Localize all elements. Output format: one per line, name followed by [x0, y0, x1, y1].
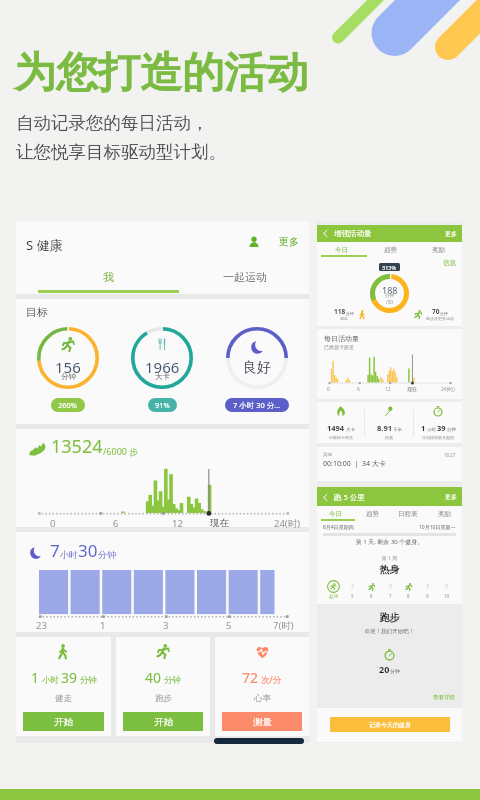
- staticText: 其他: [323, 452, 332, 458]
- staticText: /6000 步: [103, 445, 139, 457]
- staticText: 260%: [58, 400, 78, 410]
- button[interactable]: 趋势: [354, 506, 390, 521]
- button[interactable]: 奖励: [414, 242, 462, 257]
- staticText: 分钟: [346, 311, 354, 316]
- button[interactable]: 奖励: [426, 506, 462, 521]
- staticText: 20: [379, 663, 390, 675]
- staticText: 188: [382, 284, 398, 296]
- staticText: 30: [78, 539, 98, 562]
- staticText: 自动记录您的每日活动， 让您悦享目标驱动型计划。: [16, 112, 226, 163]
- staticText: 6: [370, 593, 373, 599]
- button[interactable]: 更多: [248, 235, 299, 248]
- staticText: 开始: [54, 716, 73, 728]
- button[interactable]: 一起运动: [179, 264, 310, 290]
- button[interactable]: 查看详情: [433, 694, 455, 701]
- staticText: 分钟: [447, 427, 456, 433]
- staticText: 记录今天的健身: [369, 721, 411, 729]
- button[interactable]: 6: [365, 580, 378, 599]
- staticText: 40: [145, 668, 162, 687]
- staticText: 70: [432, 307, 440, 316]
- staticText: 健走: [340, 316, 348, 321]
- staticText: 12: [172, 517, 183, 530]
- button[interactable]: 我: [38, 264, 179, 290]
- button[interactable]: 开始: [23, 712, 104, 731]
- staticText: 热身: [317, 563, 462, 576]
- staticText: 8月4日星期四: [323, 524, 354, 531]
- staticText: 7(时): [273, 619, 294, 632]
- button[interactable]: 日程表: [390, 506, 426, 521]
- button[interactable]: 测量: [222, 712, 302, 731]
- button[interactable]: 更多: [445, 493, 457, 501]
- staticText: 小时: [42, 675, 59, 686]
- staticText: 开始: [154, 716, 173, 728]
- button[interactable]: 今日: [317, 242, 366, 257]
- staticText: 已燃烧卡路里: [329, 435, 353, 440]
- button[interactable]: 开始: [123, 712, 203, 731]
- staticText: S 健康: [26, 236, 63, 254]
- button[interactable]: 记录今天的健身: [330, 717, 450, 732]
- button[interactable]: 1966: [131, 327, 193, 412]
- button[interactable]: ?: [421, 580, 434, 599]
- staticText: 千米: [393, 427, 402, 433]
- staticText: 跑步: [324, 611, 455, 624]
- staticText: 分钟: [98, 549, 116, 560]
- staticText: 1: [31, 668, 40, 687]
- staticText: 奖励: [438, 510, 451, 518]
- staticText: 313%: [382, 264, 397, 271]
- staticText: 增强活动量: [334, 229, 372, 238]
- staticText: 16:27: [444, 452, 456, 458]
- button[interactable]: ?: [384, 580, 397, 599]
- staticText: 1: [100, 619, 106, 632]
- staticText: 现在: [210, 517, 229, 529]
- staticText: 今日: [335, 246, 348, 254]
- button[interactable]: 良好: [225, 327, 289, 412]
- staticText: 大卡: [155, 372, 170, 381]
- button[interactable]: ?: [440, 580, 453, 599]
- staticText: 1494: [327, 423, 345, 433]
- staticText: 7 小时 30 分…: [233, 400, 281, 410]
- button[interactable]: ?: [346, 580, 359, 599]
- staticText: 一起运动: [223, 270, 267, 284]
- staticText: ?: [351, 582, 355, 592]
- button[interactable]: 起/4: [327, 580, 340, 599]
- staticText: 日程表: [398, 510, 418, 518]
- staticText: 更多: [279, 235, 299, 248]
- staticText: 00:10:00 | 34 大卡: [323, 459, 386, 469]
- button[interactable]: 趋势: [366, 242, 414, 257]
- staticText: 每日活动量: [324, 334, 359, 343]
- button[interactable]: [322, 230, 329, 237]
- staticText: 信息: [443, 259, 456, 267]
- staticText: 1966: [145, 357, 180, 377]
- staticText: 13524: [51, 434, 103, 459]
- staticText: ?: [426, 582, 430, 592]
- staticText: ?: [389, 582, 393, 592]
- staticText: 分钟: [385, 293, 394, 299]
- button[interactable]: 今日: [317, 506, 354, 521]
- staticText: 小时: [60, 549, 78, 560]
- staticText: 5: [351, 593, 354, 599]
- staticText: 更多: [445, 493, 457, 501]
- staticText: 跑步: [155, 693, 172, 704]
- button[interactable]: [322, 494, 329, 501]
- staticText: 24(时): [441, 386, 455, 393]
- staticText: 0: [50, 517, 56, 530]
- staticText: 小时: [427, 427, 436, 433]
- staticText: 目标: [26, 305, 48, 319]
- staticText: 跑 5 公里: [334, 492, 365, 502]
- staticText: ?: [445, 582, 449, 592]
- staticText: 趋势: [366, 510, 379, 518]
- staticText: 12: [385, 386, 391, 393]
- staticText: 起/4: [329, 593, 338, 599]
- button[interactable]: 8: [402, 580, 415, 599]
- staticText: 3: [163, 619, 169, 632]
- staticText: 奖励: [432, 246, 445, 254]
- button[interactable]: 更多: [445, 230, 457, 238]
- staticText: 欢迎！我们开始吧！: [324, 628, 455, 635]
- staticText: 156: [55, 357, 81, 377]
- staticText: 118: [334, 307, 346, 316]
- staticText: 良好: [243, 359, 271, 377]
- staticText: 10月10日星期一: [419, 524, 456, 531]
- button[interactable]: 156: [37, 327, 99, 412]
- staticText: 健走: [55, 693, 72, 704]
- staticText: 24(时): [274, 517, 301, 530]
